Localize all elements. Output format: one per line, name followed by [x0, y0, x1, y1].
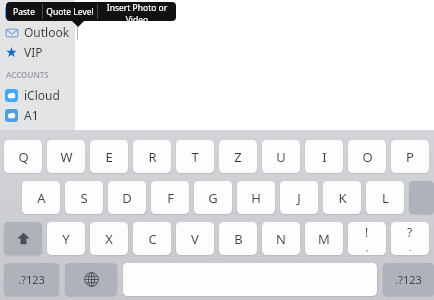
button[interactable]: I	[305, 140, 343, 173]
button[interactable]: A	[22, 181, 60, 214]
staticText: Z	[234, 148, 242, 166]
staticText: K	[338, 189, 347, 207]
button[interactable]: H	[237, 181, 275, 214]
button[interactable]: M	[305, 222, 343, 255]
staticText: .?123	[395, 272, 422, 287]
button[interactable]: Z	[219, 140, 257, 173]
staticText: A1	[24, 4, 39, 20]
staticText: .	[409, 241, 412, 253]
staticText: R	[148, 148, 157, 166]
staticText: iCloud	[24, 87, 60, 103]
staticText: Quote Level	[46, 6, 94, 18]
staticText: S	[80, 189, 88, 207]
staticText: L	[382, 189, 389, 207]
staticText: T	[191, 148, 199, 166]
button[interactable]: Paste	[6, 2, 42, 21]
staticText: ?	[407, 224, 413, 240]
button[interactable]: O	[348, 140, 386, 173]
button[interactable]: R	[133, 140, 171, 173]
staticText: H	[251, 189, 261, 207]
button[interactable]: C	[133, 222, 171, 255]
button[interactable]: ?	[391, 222, 429, 255]
staticText: E	[105, 148, 113, 166]
staticText: A1	[24, 107, 39, 123]
staticText: B	[234, 230, 243, 248]
staticText: D	[122, 189, 132, 207]
staticText: C	[148, 230, 157, 248]
staticText: I	[322, 148, 327, 166]
button[interactable]: K	[323, 181, 361, 214]
staticText: X	[105, 230, 113, 248]
button[interactable]: Y	[47, 222, 85, 255]
button[interactable]: P	[391, 140, 429, 173]
button[interactable]: VIP	[5, 42, 75, 62]
button[interactable]: G	[194, 181, 232, 214]
button[interactable]: S	[65, 181, 103, 214]
staticText: .?123	[18, 272, 45, 287]
staticText: !	[365, 224, 369, 240]
button[interactable]: iCloud	[5, 85, 75, 105]
button[interactable]: X	[90, 222, 128, 255]
button[interactable]: N	[262, 222, 300, 255]
staticText: Q	[18, 148, 29, 166]
button[interactable]: .?123	[4, 263, 59, 296]
button[interactable]: E	[90, 140, 128, 173]
staticText: ACCOUNTS	[6, 69, 49, 80]
button[interactable]: V	[176, 222, 214, 255]
staticText: Paste	[13, 6, 35, 18]
button[interactable]: A1	[5, 2, 75, 22]
staticText: J	[297, 189, 301, 207]
button[interactable]: Q	[4, 140, 42, 173]
button[interactable]: B	[219, 222, 257, 255]
button[interactable]: L	[366, 181, 404, 214]
button[interactable]: U	[262, 140, 300, 173]
button[interactable]: .?123	[383, 263, 434, 296]
staticText: O	[362, 148, 373, 166]
button[interactable]: D	[108, 181, 146, 214]
button[interactable]: Quote Level	[43, 2, 97, 21]
staticText: N	[276, 230, 286, 248]
staticText: A	[37, 189, 46, 207]
staticText: V	[191, 230, 199, 248]
button[interactable]: !	[348, 222, 386, 255]
staticText: P	[406, 148, 414, 166]
button[interactable]: T	[176, 140, 214, 173]
button[interactable]: F	[151, 181, 189, 214]
staticText: G	[208, 189, 218, 207]
button[interactable]: J	[280, 181, 318, 214]
button[interactable]	[409, 181, 434, 214]
staticText: VIP	[24, 44, 43, 60]
staticText: Y	[62, 230, 70, 248]
staticText: Insert Photo or Video	[98, 2, 176, 21]
staticText: ,	[366, 241, 369, 253]
staticText: U	[276, 148, 286, 166]
staticText: M	[318, 230, 330, 248]
staticText: F	[167, 189, 174, 207]
button[interactable]: Insert Photo or Video	[98, 2, 176, 21]
button[interactable]: A1	[5, 105, 75, 125]
button[interactable]: Switch keyboard language	[65, 263, 117, 296]
button[interactable]: Shift	[4, 222, 42, 255]
button[interactable]: W	[47, 140, 85, 173]
staticText: Outlook	[24, 24, 70, 40]
staticText: W	[60, 148, 73, 166]
button[interactable]: Outlook	[5, 22, 75, 42]
